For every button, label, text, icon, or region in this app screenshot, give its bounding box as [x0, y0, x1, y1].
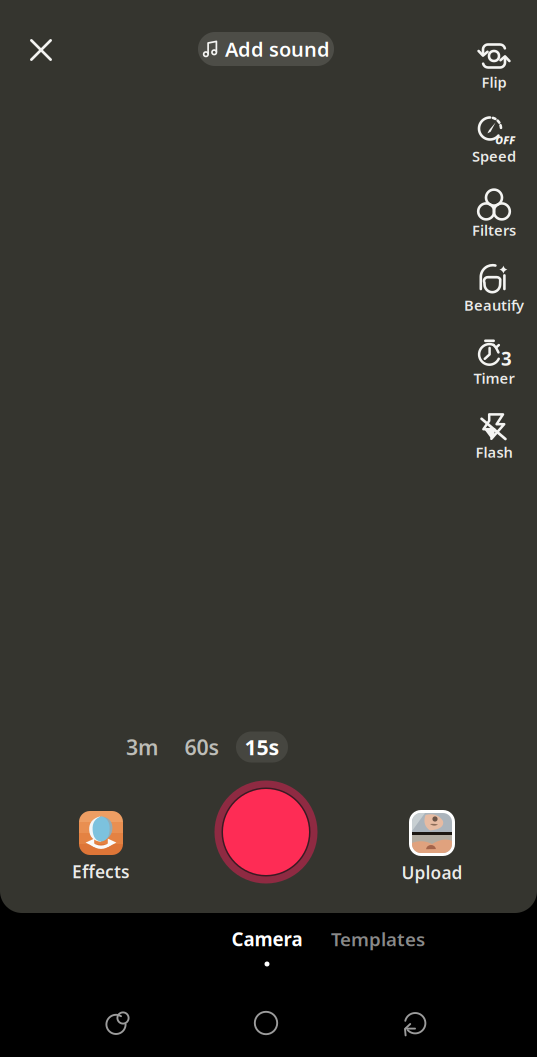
staticText: 15s	[244, 733, 279, 761]
staticText: Flip	[481, 72, 506, 92]
staticText: Beautify	[464, 295, 524, 315]
button[interactable]: Camera	[219, 926, 315, 976]
staticText: Add sound	[225, 36, 330, 62]
button[interactable]: 60s	[176, 731, 228, 762]
staticText: Camera	[231, 927, 302, 951]
button[interactable]: OFF	[457, 111, 531, 167]
staticText: Flash	[475, 442, 512, 462]
button[interactable]: Filters	[457, 185, 531, 241]
button[interactable]: 3m	[116, 731, 168, 762]
button[interactable]: Flash	[457, 407, 531, 463]
staticText: Effects	[72, 860, 130, 883]
staticText: 60s	[184, 733, 219, 761]
button[interactable]: Close	[18, 27, 64, 73]
button[interactable]: Add sound	[198, 32, 334, 66]
staticText: Speed	[472, 146, 516, 166]
button[interactable]: 15s	[236, 731, 288, 762]
button[interactable]: Templates	[318, 926, 438, 952]
staticText: 3	[501, 346, 512, 371]
button[interactable]: Flip	[457, 37, 531, 93]
staticText: OFF	[495, 133, 515, 147]
staticText: Timer	[473, 368, 514, 388]
staticText: 3m	[126, 733, 158, 761]
button[interactable]: 3	[457, 333, 531, 389]
button[interactable]: Effects	[56, 811, 146, 883]
staticText: Filters	[472, 220, 516, 240]
button[interactable]: Beautify	[457, 260, 531, 316]
staticText: Templates	[331, 927, 425, 951]
button[interactable]: Back	[383, 1001, 445, 1045]
staticText: Upload	[401, 861, 462, 884]
button[interactable]: Upload	[387, 810, 477, 884]
button[interactable]: Record	[214, 780, 317, 883]
button[interactable]: Recents	[87, 1000, 149, 1044]
button[interactable]: Home	[235, 1001, 297, 1045]
